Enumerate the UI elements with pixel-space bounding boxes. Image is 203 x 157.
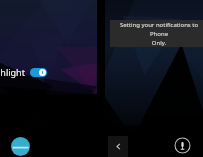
button[interactable]: Back xyxy=(108,136,128,157)
button[interactable]: Open camera xyxy=(11,137,30,156)
button[interactable]: Setting your notifications to Phone Only… xyxy=(110,20,203,47)
staticText: Flashlight xyxy=(0,66,25,78)
button[interactable]: Flashlight xyxy=(0,63,47,81)
staticText: Setting your notifications to Phone Only… xyxy=(116,21,202,47)
button[interactable]: Voice search xyxy=(174,137,191,154)
button[interactable]: Flashlight toggle xyxy=(30,68,47,77)
